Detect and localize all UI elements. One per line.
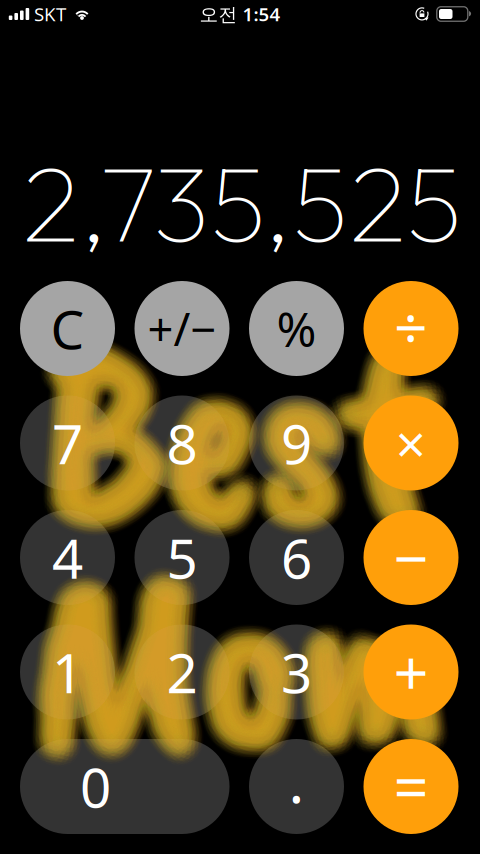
staticText: Mom <box>45 503 462 822</box>
staticText: Best <box>42 263 432 575</box>
staticText: 5 <box>166 521 197 594</box>
staticText: Mom <box>28 485 445 804</box>
staticText: 1 <box>52 636 83 708</box>
staticText: Mom <box>33 493 450 813</box>
button[interactable]: × <box>363 395 458 490</box>
button[interactable]: 0 <box>20 739 229 834</box>
button[interactable]: ÷ <box>363 281 458 376</box>
staticText: Mom <box>20 497 437 816</box>
staticText: Mom <box>15 497 432 816</box>
staticText: 2 <box>166 636 197 708</box>
button[interactable]: 7 <box>20 395 115 490</box>
staticText: Mom <box>33 487 450 806</box>
staticText: Best <box>36 287 426 600</box>
staticText: Best <box>37 278 427 590</box>
staticText: Best <box>47 283 437 595</box>
staticText: Best <box>34 273 424 586</box>
staticText: C <box>50 293 84 364</box>
button[interactable]: 6 <box>249 510 344 605</box>
staticText: Best <box>52 268 442 581</box>
staticText: Best <box>50 280 440 593</box>
staticText: Mom <box>16 506 433 825</box>
staticText: Best <box>29 273 419 585</box>
staticText: 오전 1:54 <box>199 2 280 26</box>
staticText: Best <box>57 272 447 585</box>
staticText: Best <box>51 276 441 589</box>
staticText: Best <box>39 266 429 579</box>
staticText: Mom <box>25 505 442 825</box>
button[interactable]: 1 <box>20 624 115 719</box>
button[interactable]: + <box>363 624 458 719</box>
staticText: Mom <box>17 504 434 823</box>
staticText: Mom <box>29 489 446 808</box>
button[interactable]: 4 <box>20 510 115 605</box>
staticText: Mom <box>33 485 450 804</box>
staticText: Best <box>48 266 438 578</box>
staticText: Mom <box>23 497 440 817</box>
button[interactable]: 8 <box>134 395 229 490</box>
staticText: 0 <box>80 750 111 823</box>
staticText: Mom <box>40 505 457 824</box>
staticText: Best <box>55 266 445 578</box>
staticText: Best <box>38 285 428 598</box>
staticText: Mom <box>43 507 460 827</box>
staticText: Mom <box>36 496 453 815</box>
staticText: Mom <box>28 507 445 826</box>
button[interactable]: +/− <box>134 281 229 376</box>
staticText: Best <box>56 281 446 594</box>
button[interactable]: = <box>363 739 458 834</box>
staticText: Mom <box>28 487 445 806</box>
staticText: Mom <box>28 497 445 816</box>
staticText: ÷ <box>394 287 428 365</box>
staticText: Mom <box>32 515 449 834</box>
button[interactable]: 3 <box>249 624 344 719</box>
staticText: Best <box>45 289 435 602</box>
staticText: Best <box>38 264 428 576</box>
staticText: Mom <box>34 490 451 809</box>
staticText: Mom <box>33 507 450 826</box>
staticText: Mom <box>43 496 460 815</box>
button[interactable]: 5 <box>134 510 229 605</box>
staticText: Best <box>34 265 424 577</box>
staticText: Mom <box>27 503 444 822</box>
staticText: Best <box>54 281 444 593</box>
staticText: Best <box>31 280 421 592</box>
staticText: Best <box>39 281 429 594</box>
staticText: Mom <box>19 502 436 821</box>
staticText: Mom <box>33 502 450 821</box>
staticText: Mom <box>40 511 457 830</box>
button[interactable]: 9 <box>249 395 344 490</box>
staticText: Mom <box>26 499 443 818</box>
staticText: Best <box>47 278 437 591</box>
staticText: Mom <box>24 486 441 805</box>
staticText: Mom <box>22 493 439 812</box>
button[interactable]: 2 <box>134 624 229 719</box>
staticText: Mom <box>28 511 445 830</box>
staticText: Mom <box>25 494 442 813</box>
staticText: Best <box>32 271 422 583</box>
staticText: × <box>395 408 426 478</box>
staticText: Mom <box>23 513 440 832</box>
staticText: Mom <box>38 492 455 812</box>
staticText: Best <box>50 288 440 601</box>
staticText: Mom <box>30 504 447 823</box>
staticText: Mom <box>27 513 444 832</box>
staticText: Mom <box>22 511 439 830</box>
staticText: Mom <box>29 492 446 812</box>
button[interactable]: % <box>249 281 344 376</box>
staticText: Best <box>47 263 437 575</box>
staticText: Best <box>50 272 440 585</box>
staticText: 7 <box>52 407 83 479</box>
staticText: Best <box>47 261 437 574</box>
staticText: Best <box>41 291 431 603</box>
staticText: Mom <box>37 500 454 820</box>
staticText: Mom <box>30 500 447 819</box>
button[interactable]: − <box>363 510 458 605</box>
staticText: Best <box>37 273 427 586</box>
button[interactable]: C <box>20 281 115 376</box>
staticText: Best <box>54 272 444 585</box>
staticText: Mom <box>23 502 440 821</box>
staticText: 3 <box>281 636 312 708</box>
staticText: % <box>276 297 316 360</box>
button[interactable]: . <box>249 739 344 834</box>
